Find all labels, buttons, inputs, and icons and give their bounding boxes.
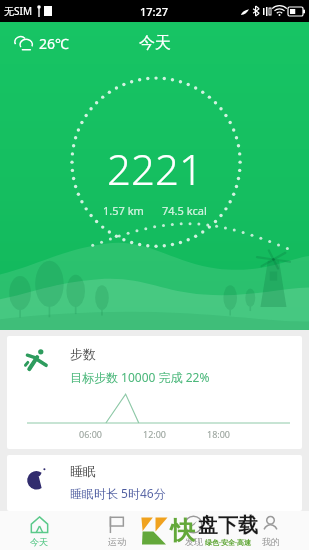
button[interactable]: 今天 xyxy=(0,511,78,550)
staticText: 睡眠 xyxy=(70,463,96,479)
button[interactable]: 运动 xyxy=(78,511,155,550)
staticText: 18:00 xyxy=(207,428,231,440)
staticText: 74.5 kcal xyxy=(162,203,207,218)
staticText: 目标步数 10000 完成 22% xyxy=(70,369,210,385)
staticText: 我的 xyxy=(262,536,280,547)
staticText: 今天 xyxy=(139,33,171,53)
staticText: 发现 xyxy=(185,536,203,547)
staticText: 绿色·安全·高速 xyxy=(205,538,251,548)
staticText: 步数 xyxy=(70,346,96,362)
button[interactable]: 我的 xyxy=(232,511,309,550)
button[interactable]: 睡眠 xyxy=(7,455,302,511)
other: 运动 xyxy=(107,515,126,534)
staticText: 2221 xyxy=(107,140,203,197)
staticText: 今天 xyxy=(30,536,48,547)
button[interactable]: 步数 xyxy=(7,336,302,449)
staticText: 06:00 xyxy=(79,428,103,440)
staticText: 快 xyxy=(170,515,195,546)
staticText: 17:27 xyxy=(140,4,169,19)
staticText: 26℃ xyxy=(39,34,69,53)
staticText: 运动 xyxy=(108,536,126,547)
other: 发现 xyxy=(184,515,203,534)
staticText: 无SIM xyxy=(4,4,32,18)
staticText: 12:00 xyxy=(143,428,167,440)
staticText: 睡眠时长 5时46分 xyxy=(70,485,166,501)
staticText: 1.57 km xyxy=(103,203,144,218)
other: 我的 xyxy=(261,515,280,534)
button[interactable]: 发现 xyxy=(155,511,232,550)
button[interactable]: 26℃ xyxy=(10,30,73,57)
staticText: 盘下载 xyxy=(198,513,258,538)
other: 今天 xyxy=(30,515,49,534)
